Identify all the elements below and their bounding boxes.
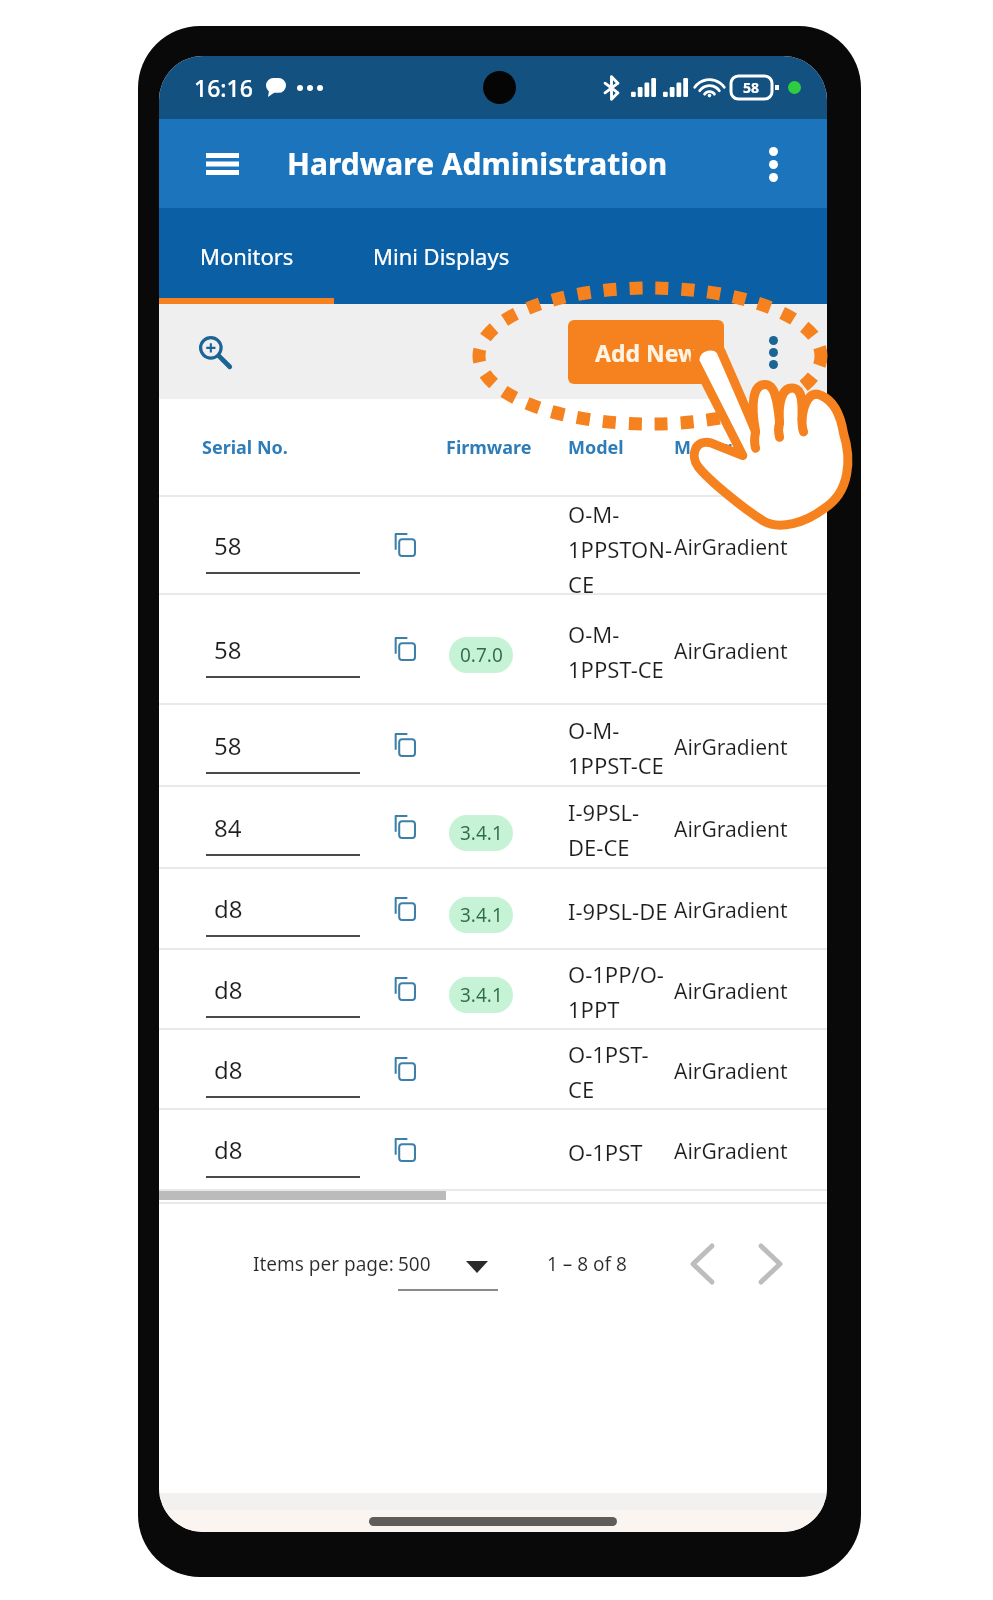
staticText: I-9PSL- [568,797,640,827]
staticText: AirGradient [674,815,788,844]
staticText: AirGradient [674,637,788,666]
staticText: 1PPST-CE [568,654,664,684]
staticText: Model [568,435,624,460]
staticText: Maker [674,435,732,460]
button[interactable]: Copy serial number [382,805,426,849]
staticText: 3.4.1 [460,820,503,846]
staticText: 1PPST-CE [568,750,664,780]
staticText: d8 [214,973,243,1006]
staticText: O-M- [568,499,620,529]
button[interactable]: 58 [159,497,827,593]
button[interactable]: Monitors [159,208,334,304]
button[interactable]: Previous page [672,1234,732,1294]
staticText: 3.4.1 [460,982,503,1008]
staticText: AirGradient [674,533,788,562]
button[interactable]: d8 [159,950,827,1028]
staticText: Mini Displays [373,241,510,271]
staticText: 16:16 [194,72,253,103]
staticText: d8 [214,1133,243,1166]
button[interactable]: d8 [159,1030,827,1108]
staticText: I-9PSL-DE [568,896,668,926]
staticText: 58 [214,729,242,762]
button[interactable]: Mini Displays [364,208,519,304]
staticText: 58 [214,633,242,666]
staticText: AirGradient [674,896,788,925]
button[interactable]: More options [745,324,801,380]
staticText: CE [568,569,595,595]
button[interactable]: Copy serial number [382,887,426,931]
staticText: O-M- [568,715,620,745]
staticText: 500 [398,1251,431,1277]
button[interactable]: Copy serial number [382,967,426,1011]
button[interactable]: Add New [568,320,724,384]
staticText: 3.4.1 [460,902,503,928]
staticText: Hardware Administration [287,143,668,184]
staticText: 1 – 8 of 8 [547,1251,627,1277]
staticText: Firmware [446,435,532,460]
button[interactable]: Copy serial number [382,1128,426,1172]
button[interactable]: 500 [398,1251,508,1297]
staticText: AirGradient [674,977,788,1006]
button[interactable]: Copy serial number [382,627,426,671]
staticText: 0.7.0 [460,642,503,668]
button[interactable]: Search [187,324,243,380]
staticText: O-1PP/O- [568,959,664,989]
staticText: Items per page: [253,1251,394,1277]
button[interactable]: d8 [159,869,827,948]
staticText: 1PPT [568,994,620,1024]
button[interactable]: d8 [159,1110,827,1189]
staticText: AirGradient [674,1137,788,1166]
staticText: AirGradient [674,1057,788,1086]
staticText: 1PPSTON- [568,534,673,564]
staticText: d8 [214,1053,243,1086]
staticText: Serial No. [202,435,288,460]
staticText: d8 [214,892,243,925]
button[interactable]: 84 [159,787,827,867]
staticText: 58 [743,78,760,97]
button[interactable]: Open navigation menu [196,138,248,190]
staticText: CE [568,1074,595,1104]
button[interactable]: 58 [159,595,827,703]
staticText: Monitors [200,241,294,271]
staticText: DE-CE [568,832,630,862]
staticText: AirGradient [674,733,788,762]
staticText: O-1PST- [568,1039,649,1069]
button[interactable]: Next page [740,1234,800,1294]
staticText: O-M- [568,619,620,649]
button[interactable]: Copy serial number [382,1047,426,1091]
button[interactable]: More options [747,138,799,190]
staticText: Add New [595,337,698,368]
button[interactable]: Copy serial number [382,723,426,767]
staticText: O-1PST [568,1137,643,1167]
staticText: 58 [214,529,242,562]
staticText: 84 [214,811,242,844]
button[interactable]: 58 [159,705,827,785]
button[interactable]: Copy serial number [382,523,426,567]
